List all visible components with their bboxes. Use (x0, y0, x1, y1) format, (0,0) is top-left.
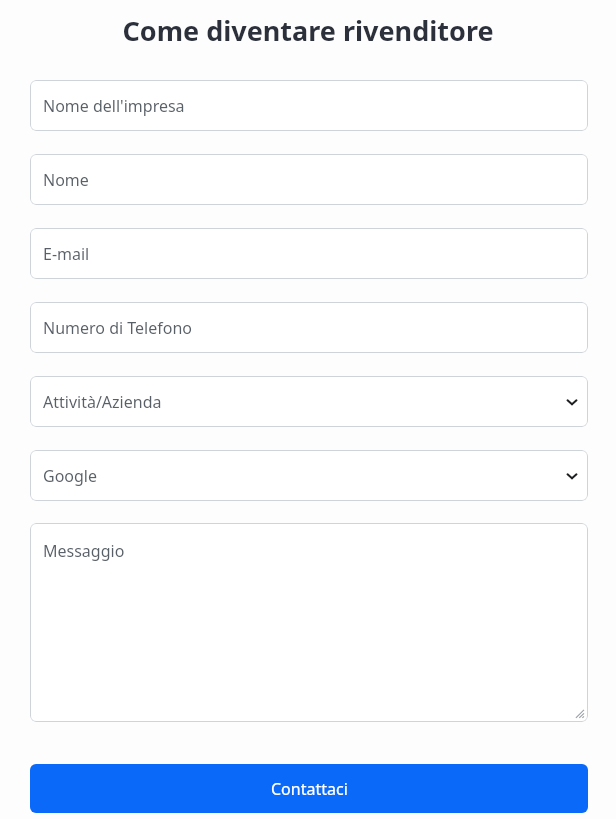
button[interactable]: Contattaci (30, 764, 588, 813)
staticText: Come diventare rivenditore (0, 12, 616, 49)
button[interactable]: Numero di Telefono (30, 302, 588, 353)
staticText: Google (43, 465, 98, 487)
staticText: Nome dell'impresa (43, 95, 185, 117)
button[interactable]: Messaggio (30, 523, 588, 722)
button[interactable]: Nome (30, 154, 588, 205)
button[interactable]: E-mail (30, 228, 588, 279)
button[interactable]: Attività/Azienda (30, 376, 588, 427)
button[interactable]: Google (30, 450, 588, 501)
staticText: E-mail (43, 243, 90, 265)
staticText: Numero di Telefono (43, 317, 192, 339)
button[interactable]: Nome dell'impresa (30, 80, 588, 131)
other: Open dropdown (565, 395, 579, 409)
staticText: Contattaci (271, 778, 348, 800)
staticText: Messaggio (43, 540, 125, 562)
other: Open dropdown (565, 469, 579, 483)
staticText: Attività/Azienda (43, 391, 162, 413)
staticText: Nome (43, 169, 89, 191)
